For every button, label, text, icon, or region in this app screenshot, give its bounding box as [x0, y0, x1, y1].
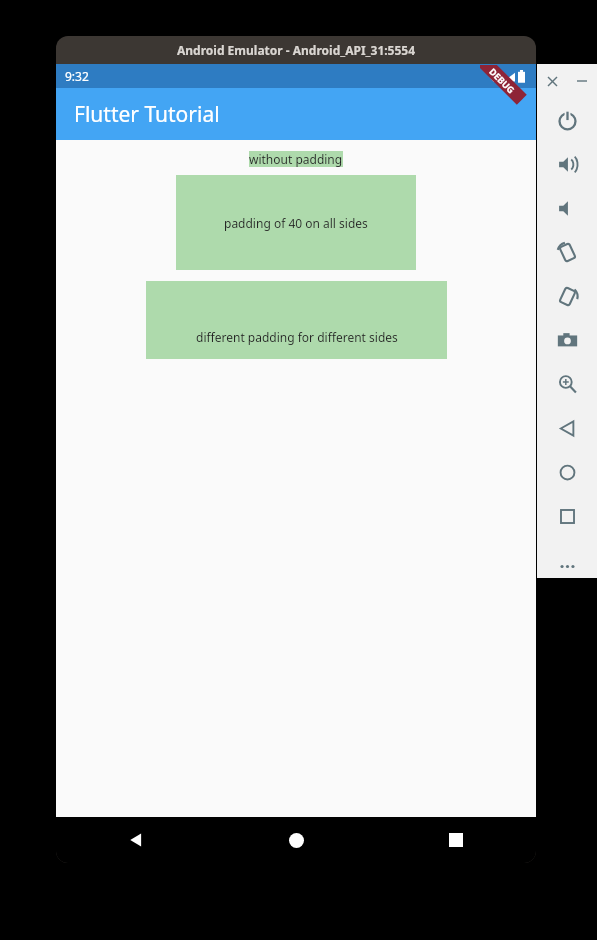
button[interactable]: Home [537, 450, 597, 494]
button[interactable]: Close [537, 64, 567, 98]
button[interactable]: Power [537, 98, 597, 142]
button[interactable]: Minimize [567, 64, 597, 98]
staticText: Android Emulator - Android_API_31:5554 [177, 42, 416, 58]
button[interactable]: Rotate right [537, 274, 597, 318]
button[interactable]: More options [537, 554, 597, 578]
staticText: different padding for different sides [196, 329, 398, 345]
button[interactable]: Recent apps [376, 817, 536, 863]
button[interactable]: Overview [537, 494, 597, 538]
button[interactable]: Home [216, 817, 376, 863]
button[interactable]: padding of 40 on all sides [176, 175, 416, 270]
button[interactable]: Back [537, 406, 597, 450]
button[interactable]: Back [56, 817, 216, 863]
button[interactable]: different padding for different sides [146, 281, 447, 359]
button[interactable]: Zoom [537, 362, 597, 406]
button[interactable]: Rotate left [537, 230, 597, 274]
staticText: without padding [249, 151, 343, 167]
button[interactable]: Volume up [537, 142, 597, 186]
staticText: 9:32 [65, 68, 89, 84]
staticText: Flutter Tutorial [74, 100, 220, 129]
staticText: DEBUG [487, 65, 518, 96]
button[interactable]: without padding [249, 151, 343, 167]
button[interactable]: Volume down [537, 186, 597, 230]
button[interactable]: Take screenshot [537, 318, 597, 362]
staticText: padding of 40 on all sides [224, 215, 368, 231]
